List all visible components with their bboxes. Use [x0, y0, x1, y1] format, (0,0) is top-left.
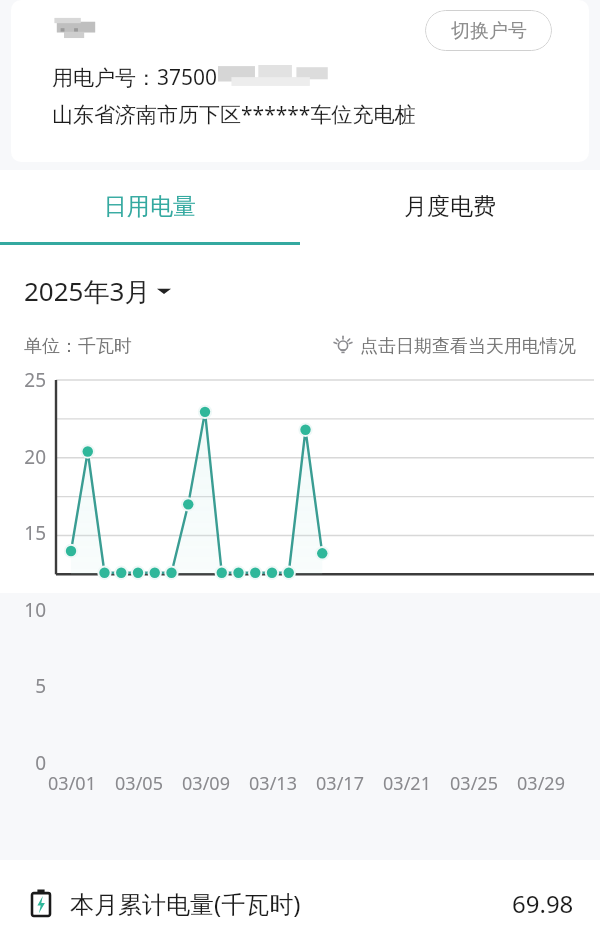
button[interactable]: 03/21 — [371, 771, 443, 796]
staticText: 69.98 — [512, 887, 574, 920]
button[interactable]: 03/01 — [36, 771, 108, 796]
staticText: 点击日期查看当天用电情况 — [360, 335, 576, 358]
button[interactable]: 日用电量 — [0, 170, 300, 242]
button[interactable]: 03/13 — [237, 771, 309, 796]
staticText: 日用电量 — [104, 192, 196, 221]
staticText: 5 — [0, 673, 46, 699]
button[interactable]: 03/25 — [438, 771, 510, 796]
staticText: 20 — [0, 444, 46, 470]
staticText: 15 — [0, 520, 46, 546]
staticText: 03/13 — [237, 771, 309, 796]
staticText: 10 — [0, 597, 46, 623]
button[interactable]: 切换户号 — [425, 10, 552, 51]
staticText: 单位：千瓦时 — [24, 335, 132, 358]
staticText: 月度电费 — [404, 192, 496, 221]
staticText: 03/05 — [103, 771, 175, 796]
staticText: 2025年3月 — [24, 273, 151, 309]
staticText: 用电户号：37500 — [52, 63, 218, 92]
staticText: 切换户号 — [451, 19, 527, 43]
staticText: 03/01 — [36, 771, 108, 796]
button[interactable]: 03/05 — [103, 771, 175, 796]
staticText: 山东省济南市历下区******车位充电桩 — [52, 100, 416, 129]
staticText: 03/25 — [438, 771, 510, 796]
button[interactable]: 03/17 — [304, 771, 376, 796]
staticText: 本月累计电量(千瓦时) — [70, 887, 301, 920]
staticText: 0 — [0, 750, 46, 776]
staticText: 25 — [0, 367, 46, 393]
button[interactable]: 2025年3月 — [24, 273, 171, 309]
staticText: 03/29 — [505, 771, 577, 796]
button[interactable]: 月度电费 — [300, 170, 600, 242]
staticText: 03/21 — [371, 771, 443, 796]
button[interactable]: 03/09 — [170, 771, 242, 796]
staticText: 03/09 — [170, 771, 242, 796]
staticText: 03/17 — [304, 771, 376, 796]
button[interactable]: 03/29 — [505, 771, 577, 796]
